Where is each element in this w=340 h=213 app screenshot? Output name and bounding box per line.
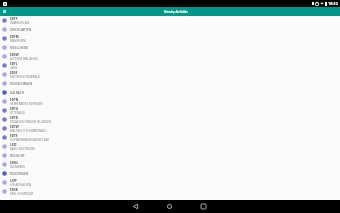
staticText: LAHR bbox=[10, 66, 18, 70]
staticText: SCHWENNINGEN AM NECKAR bbox=[10, 138, 50, 142]
staticText: OTTENAUG bbox=[10, 111, 25, 115]
staticText: EDTD bbox=[10, 116, 18, 120]
staticText: DONAUESCHINGEN VILLINGEN bbox=[10, 120, 51, 124]
staticText: EDTS bbox=[10, 134, 18, 138]
button[interactable]: EDFM bbox=[0, 34, 340, 43]
button[interactable]: Home bbox=[157, 200, 181, 213]
staticText: BLUMBERG bbox=[10, 165, 25, 169]
staticText: EDSW bbox=[10, 53, 19, 57]
button[interactable]: EDSW bbox=[0, 52, 340, 61]
button[interactable]: EDSF bbox=[0, 70, 340, 79]
staticText: HERRENBERG NUFRIGEN bbox=[10, 102, 43, 106]
staticText: HAMBURG AIR. bbox=[10, 21, 30, 25]
button[interactable]: DALBACH bbox=[0, 88, 340, 97]
staticText: MUELLHEIM bbox=[10, 46, 28, 50]
staticText: EDSF bbox=[10, 71, 18, 75]
button[interactable]: MUELLHEIM bbox=[0, 43, 340, 52]
staticText: EDTG bbox=[10, 107, 18, 111]
button[interactable]: EDNL bbox=[0, 160, 340, 169]
staticText: 18:12 bbox=[328, 1, 338, 6]
button[interactable]: BOHLHOF bbox=[0, 151, 340, 160]
button[interactable]: BOEDINGEN bbox=[0, 169, 340, 178]
staticText: EDNL bbox=[10, 161, 19, 165]
staticText: BASEL BLOTZHEIM bbox=[10, 147, 35, 151]
staticText: HATTEN HOTZENWALD bbox=[10, 75, 41, 79]
staticText: KIRCHGARTEN bbox=[10, 28, 32, 32]
staticText: WALDSHUT SCHWARZWALD bbox=[10, 129, 47, 133]
button[interactable]: LSPF bbox=[0, 178, 340, 187]
staticText: KEHL SCHWEIGER bbox=[10, 192, 34, 196]
staticText: BOHLHOF bbox=[10, 154, 25, 158]
staticText: DALBACH bbox=[10, 91, 24, 95]
staticText: EDSK bbox=[10, 188, 18, 192]
staticText: LSZI bbox=[10, 143, 17, 147]
staticText: ROSSELFINGEN bbox=[10, 82, 33, 86]
button[interactable]: EDFL bbox=[0, 61, 340, 70]
button[interactable]: EDFF bbox=[0, 16, 340, 25]
staticText: LSPF bbox=[10, 179, 18, 183]
staticText: BOEDINGEN bbox=[10, 172, 29, 176]
button[interactable]: EDTG bbox=[0, 106, 340, 115]
button[interactable]: EDTN bbox=[0, 97, 340, 106]
staticText: EDTW bbox=[10, 125, 19, 129]
button[interactable]: EDTW bbox=[0, 124, 340, 133]
button[interactable]: EDTS bbox=[0, 133, 340, 142]
button[interactable]: Recent apps bbox=[191, 200, 215, 213]
button[interactable]: Back bbox=[123, 200, 147, 213]
staticText: ALTDORF WALLBURG bbox=[10, 57, 38, 61]
staticText: EDFL bbox=[10, 62, 18, 66]
button[interactable]: EDSK bbox=[0, 187, 340, 196]
button[interactable]: ROSSELFINGEN bbox=[0, 79, 340, 88]
button[interactable]: KIRCHGARTEN bbox=[0, 25, 340, 34]
button[interactable]: LSZI bbox=[0, 142, 340, 151]
button[interactable]: Navigation menu bbox=[0, 7, 8, 16]
staticText: SCHAFFHAUSEN bbox=[10, 183, 32, 187]
button[interactable]: EDTD bbox=[0, 115, 340, 124]
staticText: EDFF bbox=[10, 17, 18, 21]
staticText: EDTN bbox=[10, 98, 19, 102]
staticText: MANNHEIM bbox=[10, 39, 26, 43]
staticText: Nearby Airfields bbox=[164, 10, 188, 14]
staticText: EDFM bbox=[10, 35, 19, 39]
